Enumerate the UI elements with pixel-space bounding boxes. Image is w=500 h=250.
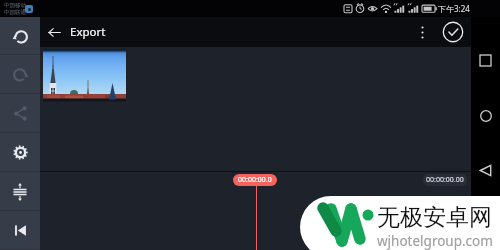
button[interactable]: Recent apps: [471, 46, 500, 75]
staticText: 中国移动: [4, 2, 26, 9]
button[interactable]: Back: [471, 156, 500, 185]
button[interactable]: Back: [40, 18, 68, 46]
staticText: 00:00:00.0: [238, 175, 272, 185]
button[interactable]: Share: [0, 94, 40, 133]
button[interactable]: Playhead position: [238, 175, 272, 185]
button[interactable]: Settings: [0, 133, 40, 172]
button[interactable]: Confirm export: [440, 19, 466, 45]
button[interactable]: Adjust: [0, 172, 40, 211]
staticText: 无极安卓网: [377, 203, 492, 232]
button[interactable]: Skip to start: [0, 211, 40, 250]
button[interactable]: Video clip preview: [43, 49, 126, 101]
staticText: wjhotelgroup.com: [377, 232, 493, 250]
button[interactable]: Home: [471, 101, 500, 130]
staticText: 00:00:00.00: [426, 175, 464, 185]
button[interactable]: Undo: [0, 17, 40, 55]
staticText: Export: [70, 24, 106, 40]
button[interactable]: Total duration: [426, 175, 464, 185]
button[interactable]: Redo: [0, 55, 40, 94]
staticText: 下午3:24: [438, 3, 470, 14]
staticText: 中国联通: [4, 9, 26, 16]
button[interactable]: More options: [410, 20, 434, 44]
